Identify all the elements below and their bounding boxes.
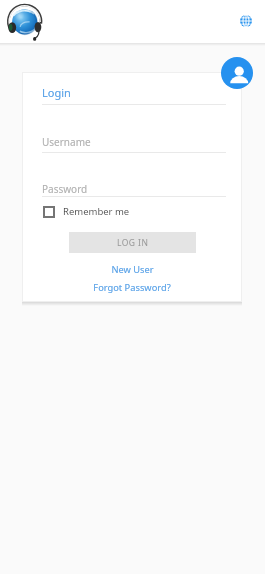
button[interactable]: New User bbox=[22, 262, 242, 277]
staticText: Forgot Password? bbox=[93, 281, 171, 294]
staticText: Login bbox=[42, 85, 71, 100]
button[interactable]: LOG IN bbox=[69, 232, 196, 253]
button[interactable]: Home bbox=[4, 1, 46, 43]
button[interactable]: Forgot Password? bbox=[22, 280, 242, 295]
staticText: Remember me bbox=[63, 205, 130, 218]
staticText: Username bbox=[42, 135, 91, 149]
button[interactable]: Language bbox=[237, 12, 257, 32]
staticText: New User bbox=[111, 263, 154, 276]
button[interactable]: Password bbox=[42, 180, 226, 197]
staticText: LOG IN bbox=[117, 237, 149, 249]
button[interactable]: Account bbox=[221, 57, 253, 89]
button[interactable]: Remember me bbox=[43, 205, 130, 218]
button[interactable]: Username bbox=[42, 133, 226, 153]
staticText: Password bbox=[42, 182, 88, 196]
